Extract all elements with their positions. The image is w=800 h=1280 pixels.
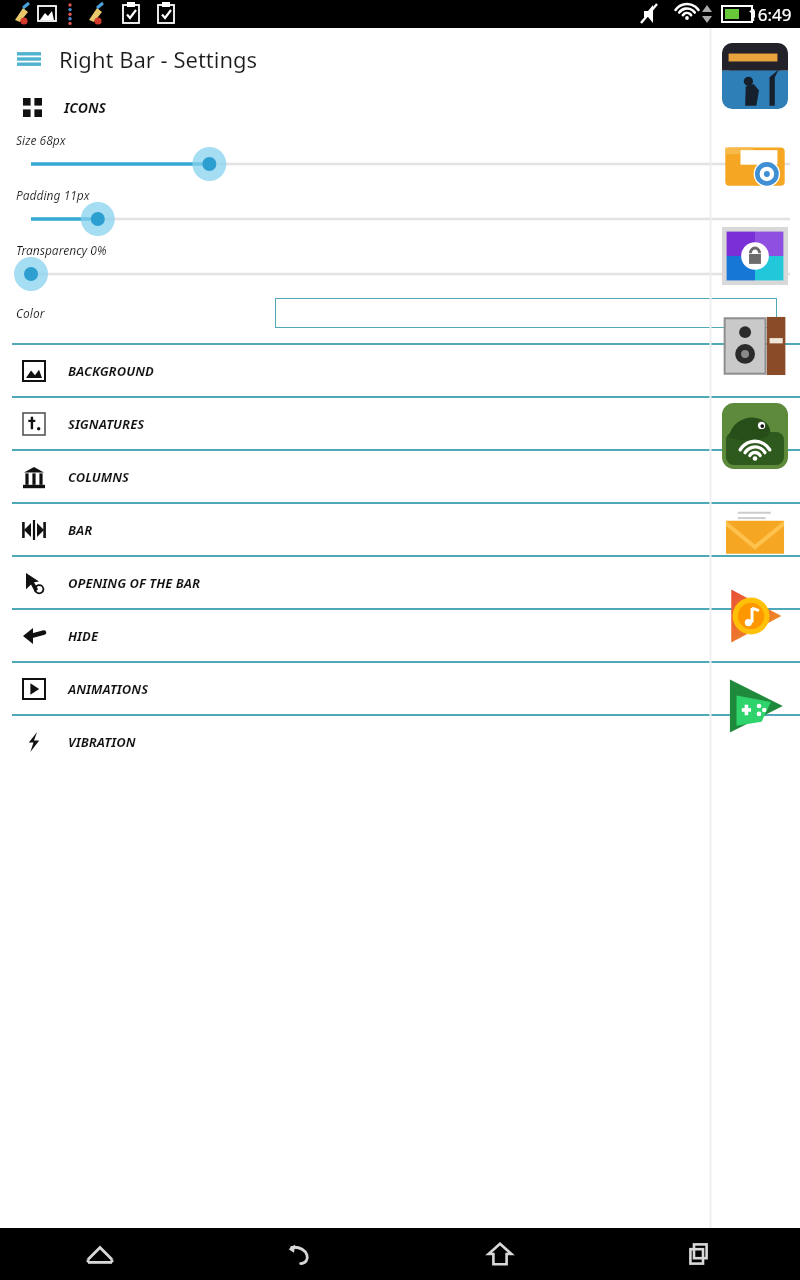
button[interactable]: OPENING OF THE BAR xyxy=(0,557,800,608)
staticText: COLUMNS xyxy=(68,468,129,486)
button[interactable]: Open navigation menu xyxy=(8,38,50,80)
button[interactable]: Expand xyxy=(0,1228,200,1280)
button[interactable]: Padding 11px xyxy=(0,180,800,235)
staticText: Padding 11px xyxy=(16,187,90,203)
staticText: BAR xyxy=(68,521,93,539)
button[interactable]: Kindle xyxy=(710,31,800,121)
button[interactable]: BAR xyxy=(0,504,800,555)
button[interactable]: SIGNATURES xyxy=(0,398,800,449)
button[interactable]: Email xyxy=(710,481,800,571)
button[interactable]: WiFi tool xyxy=(710,391,800,481)
button[interactable]: Play Music xyxy=(710,571,800,661)
staticText: HIDE xyxy=(68,627,98,645)
staticText: SIGNATURES xyxy=(68,415,145,433)
button[interactable]: Transparency 0% xyxy=(0,235,800,290)
button[interactable]: Home xyxy=(400,1228,600,1280)
staticText: Transparency 0% xyxy=(16,242,107,258)
staticText: VIBRATION xyxy=(68,733,136,751)
button[interactable]: VIBRATION xyxy=(0,716,800,767)
staticText: ANIMATIONS xyxy=(68,680,149,698)
staticText: Right Bar - Settings xyxy=(59,44,258,74)
button[interactable]: Back xyxy=(200,1228,400,1280)
button[interactable]: Play Games xyxy=(710,661,800,751)
button[interactable]: HIDE xyxy=(0,610,800,661)
button[interactable]: COLUMNS xyxy=(0,451,800,502)
button[interactable]: Size 68px xyxy=(0,125,800,180)
button[interactable]: App lock xyxy=(710,211,800,301)
staticText: Color xyxy=(16,305,45,321)
button[interactable]: Recent apps xyxy=(600,1228,800,1280)
button[interactable]: Volume xyxy=(710,301,800,391)
staticText: BACKGROUND xyxy=(68,362,154,380)
button[interactable]: BACKGROUND xyxy=(0,345,800,396)
button[interactable]: ANIMATIONS xyxy=(0,663,800,714)
button[interactable]: ICONS xyxy=(0,89,800,125)
staticText: 16:49 xyxy=(748,3,792,26)
staticText: OPENING OF THE BAR xyxy=(68,574,201,592)
staticText: Size 68px xyxy=(16,132,66,148)
staticText: ICONS xyxy=(64,98,106,117)
button[interactable]: Color xyxy=(0,290,800,335)
button[interactable]: File manager xyxy=(710,121,800,211)
